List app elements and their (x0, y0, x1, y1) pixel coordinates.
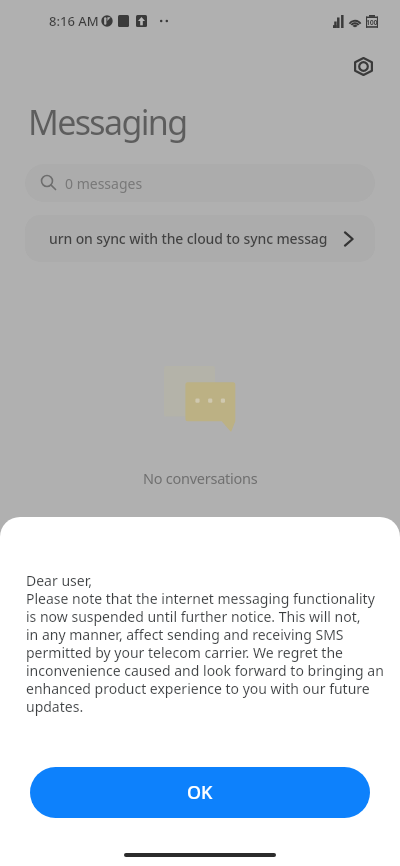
staticText: 100 (366, 18, 378, 28)
button[interactable]: Settings (346, 49, 381, 84)
staticText: 0 messages (65, 174, 143, 193)
staticText: urn on sync with the cloud to sync messa… (49, 229, 339, 248)
staticText: Dear user, Please note that the internet… (26, 571, 384, 716)
staticText: 8:16 AM (49, 12, 99, 30)
staticText: Messaging (28, 99, 187, 145)
button[interactable]: OK (30, 767, 370, 818)
staticText: No conversations (143, 468, 258, 488)
staticText: OK (187, 780, 213, 805)
button[interactable]: 0 messages (25, 164, 375, 202)
button[interactable]: urn on sync with the cloud to sync messa… (25, 215, 375, 262)
